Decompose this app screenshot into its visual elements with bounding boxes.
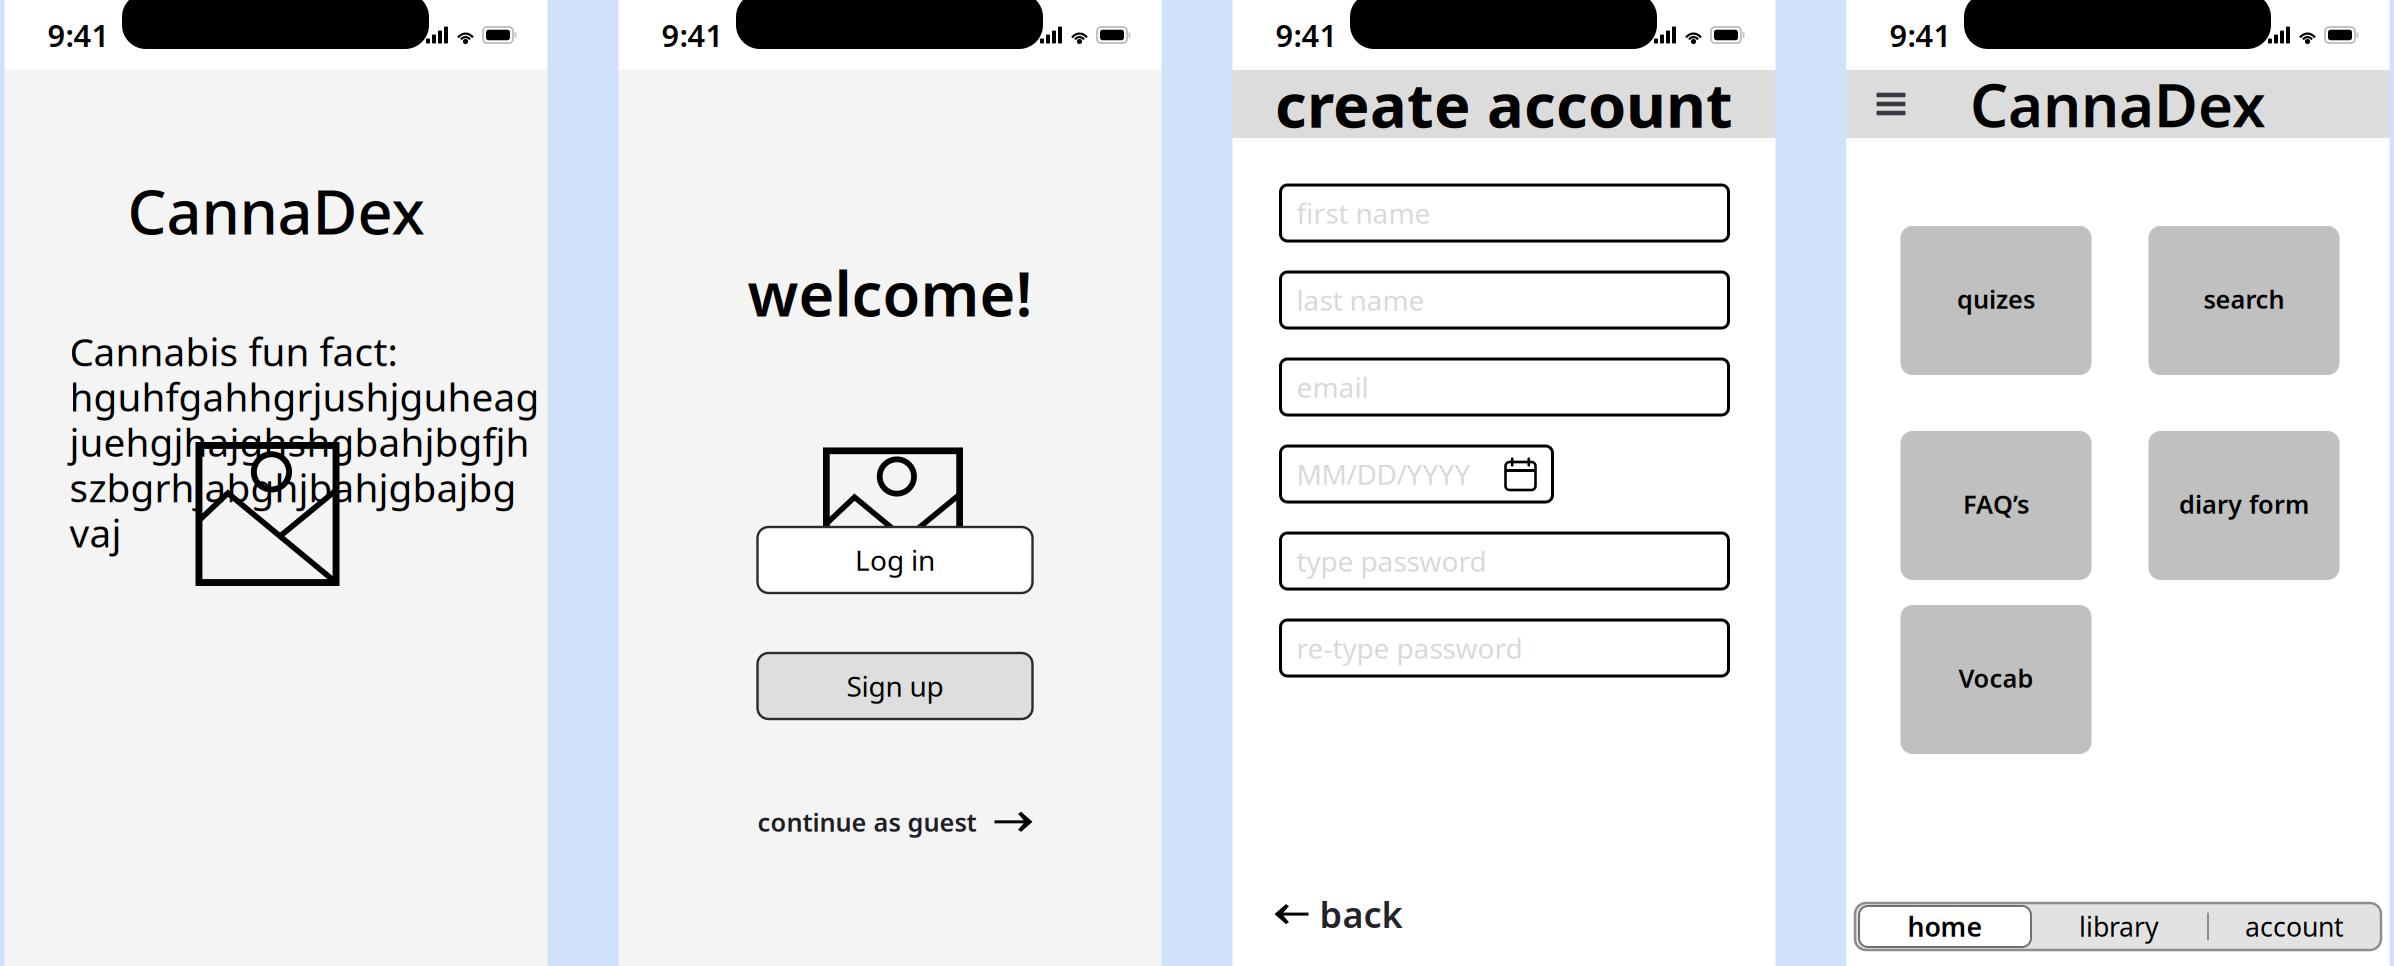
staticText: diary form [2179, 487, 2309, 521]
staticText: search [2203, 282, 2284, 316]
staticText: Log in [855, 541, 935, 579]
staticText: continue as guest [757, 805, 976, 839]
staticText: create account [1275, 63, 1733, 145]
button[interactable]: Sign up [757, 653, 1032, 719]
staticText: first name [1296, 194, 1430, 232]
staticText: re-type password [1296, 629, 1522, 667]
button[interactable]: first name [1280, 185, 1728, 241]
staticText: welcome! [747, 252, 1032, 333]
staticText: 9:41 [661, 15, 723, 55]
button[interactable]: Log in [757, 527, 1032, 593]
button[interactable]: re-type password [1280, 620, 1728, 676]
button[interactable]: type password [1280, 533, 1728, 589]
button[interactable]: last name [1280, 272, 1728, 328]
staticText: quizes [1957, 282, 2035, 316]
staticText: szbgrhjabghjbahjgbajbg [69, 461, 516, 513]
button[interactable]: continue as guest [757, 805, 1032, 839]
staticText: hguhfgahhgrjushjguheag [69, 371, 539, 422]
staticText: back [1319, 890, 1402, 938]
button[interactable]: Menu [1876, 93, 1905, 115]
staticText: 9:41 [1889, 15, 1951, 55]
staticText: email [1296, 368, 1368, 406]
staticText: Sign up [846, 667, 943, 705]
button[interactable]: quizes [1900, 226, 2091, 375]
button[interactable]: Vocab [1900, 605, 2091, 754]
staticText: CannaDex [1970, 64, 2266, 144]
staticText: MM/DD/YYYY [1296, 455, 1470, 493]
staticText: FAQ’s [1963, 487, 2029, 521]
staticText: library [2079, 909, 2159, 944]
button[interactable]: home [1859, 906, 2031, 947]
button[interactable]: MM/DD/YYYY [1280, 446, 1552, 502]
button[interactable]: FAQ’s [1900, 431, 2091, 580]
staticText: 9:41 [47, 15, 109, 55]
button[interactable]: search [2148, 226, 2339, 375]
button[interactable]: library [2031, 906, 2207, 947]
staticText: juehgjhajghshgbahjbgfjh [69, 416, 529, 467]
staticText: type password [1296, 542, 1486, 580]
staticText: 9:41 [1275, 15, 1337, 55]
staticText: Cannabis fun fact: [69, 325, 397, 377]
button[interactable]: account [2209, 906, 2380, 947]
staticText: account [2245, 909, 2344, 944]
staticText: home [1907, 909, 1982, 944]
staticText: Vocab [1958, 661, 2033, 695]
staticText: vaj [69, 507, 121, 558]
button[interactable]: diary form [2148, 431, 2339, 580]
button[interactable]: back [1274, 890, 1402, 938]
staticText: last name [1296, 281, 1424, 319]
button[interactable]: email [1280, 359, 1728, 415]
staticText: CannaDex [127, 170, 424, 251]
